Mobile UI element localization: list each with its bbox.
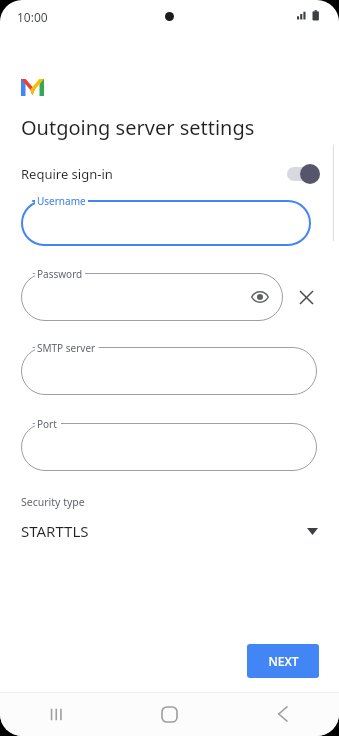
- staticText: Password: [37, 267, 83, 281]
- button[interactable]: Require sign-in: [0, 158, 339, 190]
- button[interactable]: Port: [21, 423, 317, 471]
- button[interactable]: SMTP server: [21, 347, 317, 395]
- button[interactable]: Clear password: [291, 282, 321, 312]
- button[interactable]: Show password: [247, 284, 273, 310]
- button[interactable]: Username: [21, 200, 311, 246]
- staticText: Require sign-in: [21, 165, 113, 183]
- button[interactable]: Security type: [0, 495, 339, 541]
- staticText: Port: [37, 417, 57, 431]
- staticText: 10:00: [17, 9, 48, 25]
- staticText: SMTP server: [37, 341, 96, 355]
- staticText: NEXT: [268, 653, 299, 669]
- staticText: Security type: [21, 495, 85, 509]
- button[interactable]: Password: [21, 273, 283, 321]
- button[interactable]: NEXT: [247, 644, 319, 678]
- button[interactable]: Back: [226, 692, 339, 736]
- button[interactable]: Home: [113, 692, 226, 736]
- staticText: STARTTLS: [21, 521, 89, 541]
- staticText: Username: [37, 194, 86, 208]
- staticText: Outgoing server settings: [21, 114, 255, 141]
- button[interactable]: Recent apps: [0, 692, 113, 736]
